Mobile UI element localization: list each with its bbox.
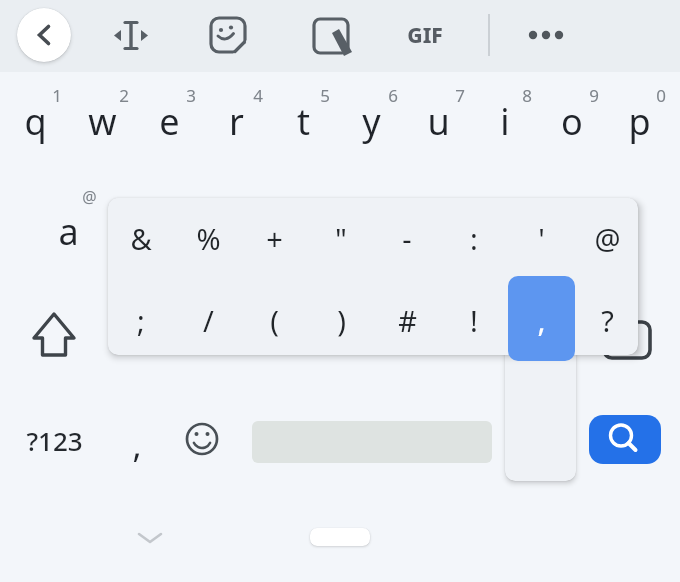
- staticText: p: [628, 97, 651, 146]
- staticText: u: [427, 97, 450, 146]
- staticText: ,: [537, 300, 546, 341]
- button[interactable]: [106, 10, 156, 60]
- staticText: 0: [656, 84, 666, 107]
- staticText: t: [297, 97, 310, 146]
- button[interactable]: (: [244, 285, 304, 355]
- staticText: q: [24, 97, 47, 146]
- button[interactable]: %: [178, 203, 238, 273]
- staticText: 5: [320, 84, 330, 107]
- button[interactable]: ': [511, 203, 571, 273]
- staticText: i: [500, 97, 510, 146]
- staticText: ?: [601, 301, 614, 340]
- staticText: ,: [132, 422, 142, 468]
- staticText: !: [470, 301, 478, 340]
- button[interactable]: ;: [111, 285, 171, 355]
- staticText: 2: [119, 84, 129, 107]
- staticText: 3: [186, 84, 196, 107]
- staticText: r: [229, 97, 244, 146]
- staticText: 7: [455, 84, 465, 107]
- button[interactable]: u: [405, 86, 471, 156]
- button[interactable]: w: [69, 86, 135, 156]
- button[interactable]: #: [377, 285, 437, 355]
- button[interactable]: ): [311, 285, 371, 355]
- button[interactable]: [174, 411, 230, 467]
- staticText: 1: [52, 84, 62, 107]
- button[interactable]: y: [338, 86, 404, 156]
- button[interactable]: [20, 305, 90, 373]
- button[interactable]: o: [539, 86, 605, 156]
- button[interactable]: &: [111, 203, 171, 273]
- staticText: 8: [522, 84, 532, 107]
- button[interactable]: [520, 18, 572, 52]
- staticText: @: [82, 186, 97, 208]
- button[interactable]: i: [472, 86, 538, 156]
- staticText: e: [159, 97, 180, 146]
- staticText: ): [337, 301, 346, 340]
- staticText: @: [594, 219, 621, 258]
- button[interactable]: /: [178, 285, 238, 355]
- staticText: 6: [388, 84, 398, 107]
- staticText: +: [266, 219, 283, 258]
- staticText: w: [88, 97, 117, 146]
- staticText: &: [130, 219, 152, 258]
- button[interactable]: !: [444, 285, 504, 355]
- button[interactable]: ": [311, 203, 371, 273]
- staticText: 4: [253, 84, 263, 107]
- button[interactable]: p: [606, 86, 672, 156]
- button[interactable]: e: [136, 86, 202, 156]
- staticText: #: [398, 301, 417, 340]
- button[interactable]: -: [377, 203, 437, 273]
- button[interactable]: ?123: [4, 415, 104, 465]
- button[interactable]: ?: [577, 285, 637, 355]
- staticText: a: [58, 207, 79, 256]
- staticText: -: [402, 219, 412, 258]
- staticText: 9: [589, 84, 599, 107]
- staticText: y: [362, 97, 381, 146]
- button[interactable]: r: [203, 86, 269, 156]
- button[interactable]: t: [270, 86, 336, 156]
- button[interactable]: @: [577, 203, 637, 273]
- button[interactable]: a: [35, 196, 101, 266]
- staticText: GIF: [407, 21, 443, 50]
- staticText: o: [561, 97, 583, 146]
- button[interactable]: +: [244, 203, 304, 273]
- button[interactable]: :: [444, 203, 504, 273]
- staticText: ': [538, 219, 545, 258]
- staticText: :: [470, 219, 478, 258]
- staticText: (: [270, 301, 279, 340]
- button[interactable]: [17, 8, 71, 62]
- button[interactable]: [206, 11, 250, 55]
- button[interactable]: q: [2, 86, 68, 156]
- button[interactable]: [589, 415, 661, 464]
- staticText: %: [196, 219, 221, 258]
- button[interactable]: ,: [112, 415, 162, 475]
- staticText: ": [335, 219, 347, 258]
- staticText: ;: [137, 301, 145, 340]
- button[interactable]: ,: [508, 276, 575, 361]
- button[interactable]: GIF: [380, 10, 470, 60]
- staticText: ?123: [26, 423, 83, 458]
- button[interactable]: [309, 11, 359, 61]
- staticText: /: [203, 301, 214, 340]
